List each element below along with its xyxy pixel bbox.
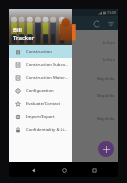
staticText: Configuration — [26, 88, 54, 94]
button[interactable]: Close navigation drawer — [9, 9, 118, 162]
button[interactable]: Evaluate/Contact — [9, 97, 72, 110]
staticText: Mag Arvbs — [97, 76, 115, 81]
button[interactable]: Configuration — [9, 84, 72, 97]
staticText: In Euro — [103, 40, 115, 45]
button[interactable]: Construction — [9, 45, 72, 58]
staticText: arbitration... — [12, 32, 39, 38]
button[interactable]: Home — [58, 164, 70, 176]
staticText: Construction Materials — [26, 75, 69, 81]
button[interactable]: Back — [27, 164, 39, 176]
staticText: Construction — [26, 49, 52, 55]
staticText: Mag Arvbs — [97, 116, 115, 121]
button[interactable]: Add — [98, 141, 114, 157]
staticText: Confidentiality & Licen — [26, 127, 69, 133]
staticText: arbi — [12, 49, 21, 55]
button[interactable]: Import/Export — [9, 110, 72, 123]
button[interactable]: Mag Arvbs — [9, 89, 118, 106]
button[interactable]: Construction Subcontr — [9, 58, 72, 71]
staticText: Bill — [13, 26, 22, 34]
button[interactable]: Construction Materials — [9, 71, 72, 84]
staticText: Mag Arvbs — [97, 93, 115, 98]
staticText: Import/Export — [26, 114, 55, 120]
button[interactable]: arbitration... — [9, 30, 118, 47]
staticText: Tracker — [13, 34, 35, 42]
button[interactable]: arbi — [9, 47, 118, 64]
button[interactable]: ortation... — [9, 106, 118, 123]
button[interactable]: Bill — [9, 9, 72, 45]
staticText: In Euro — [103, 57, 115, 62]
button[interactable]: Confidentiality & Licen — [9, 123, 72, 136]
button[interactable]: Recent apps — [88, 164, 100, 176]
staticText: 11:00 — [107, 10, 116, 15]
button[interactable]: Refresh — [92, 19, 101, 28]
staticText: Construction Subcontr — [26, 62, 69, 68]
staticText: Evaluate/Contact — [26, 101, 61, 107]
button[interactable]: Filter — [106, 19, 115, 28]
button[interactable]: Mag Arvbs — [9, 72, 118, 89]
